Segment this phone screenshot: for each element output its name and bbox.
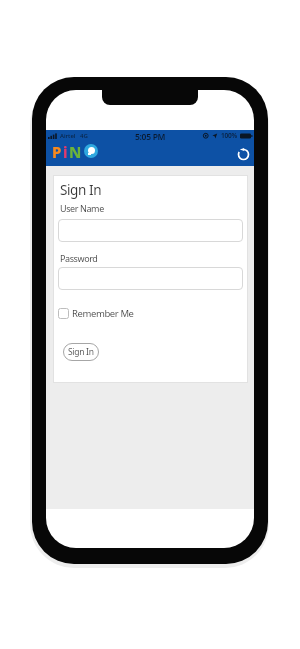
- staticText: User Name: [60, 202, 104, 214]
- staticText: i: [63, 142, 68, 159]
- staticText: 100%: [221, 131, 238, 140]
- staticText: Sign In: [60, 181, 102, 199]
- staticText: 4G: [80, 132, 88, 140]
- button[interactable]: [58, 219, 243, 242]
- button[interactable]: [58, 267, 243, 290]
- button[interactable]: [237, 148, 250, 161]
- button[interactable]: P: [52, 142, 98, 159]
- staticText: Sign In: [68, 346, 94, 358]
- staticText: Password: [60, 252, 98, 264]
- staticText: N: [69, 142, 82, 159]
- staticText: Remember Me: [72, 307, 134, 320]
- staticText: P: [52, 142, 62, 159]
- button[interactable]: Remember Me: [58, 307, 134, 320]
- staticText: Airtel: [60, 132, 76, 140]
- button[interactable]: Sign In: [63, 343, 99, 361]
- staticText: 5:05 PM: [135, 131, 166, 140]
